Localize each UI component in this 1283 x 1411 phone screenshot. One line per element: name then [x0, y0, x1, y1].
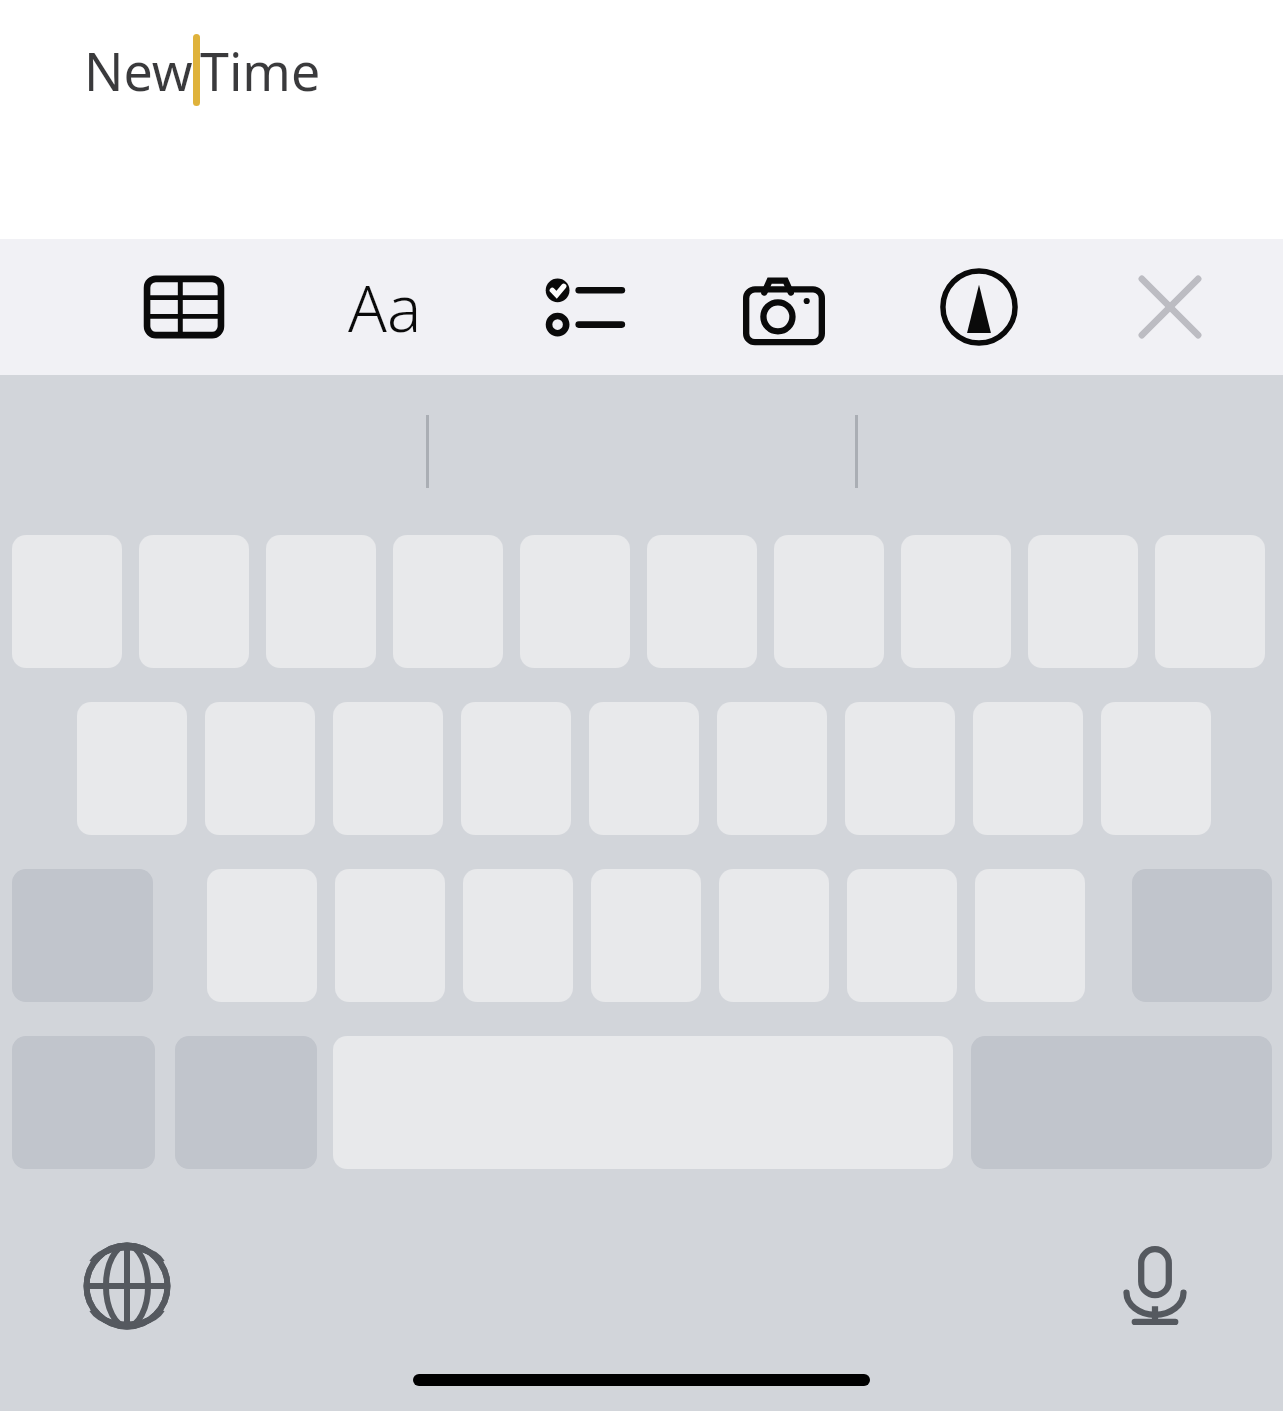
staticText: New — [84, 35, 193, 106]
button[interactable]: Dictation — [1100, 1231, 1210, 1341]
button[interactable]: Table — [124, 239, 244, 375]
button[interactable]: Markup — [919, 239, 1039, 375]
button[interactable]: Aa — [325, 239, 445, 375]
staticText: Time — [200, 35, 321, 106]
staticText: Aa — [348, 264, 422, 351]
button[interactable]: Close — [1110, 239, 1230, 375]
button[interactable]: Camera — [724, 239, 844, 375]
button[interactable]: Checklist — [524, 239, 644, 375]
button[interactable]: Change keyboard — [72, 1231, 182, 1341]
